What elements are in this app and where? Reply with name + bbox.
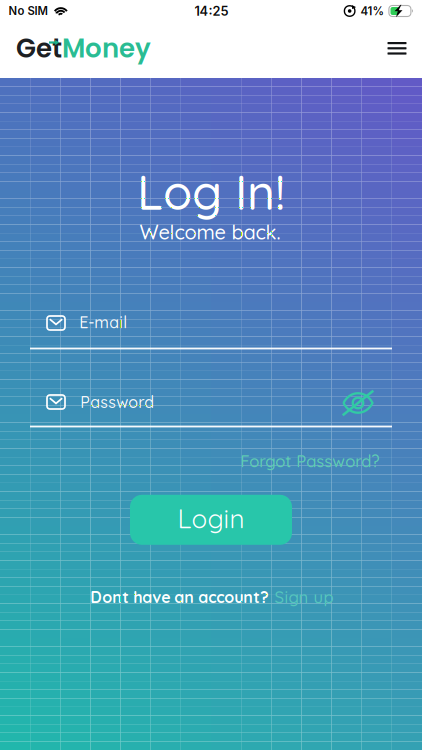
staticText: E-mail: [79, 312, 127, 332]
staticText: No SIM: [9, 4, 48, 18]
button[interactable]: Login: [130, 495, 292, 545]
staticText: Login: [177, 502, 244, 535]
staticText: Password: [80, 392, 154, 412]
staticText: Money: [62, 30, 151, 66]
button[interactable]: Show password: [335, 385, 381, 421]
button[interactable]: Menu: [375, 26, 419, 70]
staticText: Get: [16, 30, 62, 66]
staticText: 41%: [360, 4, 384, 18]
staticText: Log In!: [137, 162, 285, 222]
button[interactable]: Sign up: [274, 584, 333, 610]
staticText: Dont have an account?: [90, 587, 268, 607]
staticText: Sign up: [274, 587, 333, 607]
staticText: Welcome back.: [139, 219, 280, 244]
staticText: Forgot Password?: [240, 451, 379, 471]
button[interactable]: Forgot Password?: [235, 448, 385, 474]
staticText: 14:25: [194, 3, 228, 19]
